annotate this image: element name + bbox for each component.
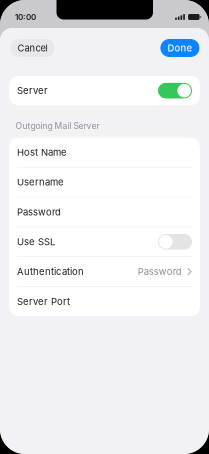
button[interactable]: Cancel <box>10 39 55 57</box>
staticText: Password <box>17 206 61 218</box>
staticText: Server <box>17 85 48 96</box>
button[interactable]: Authentication <box>9 257 200 286</box>
staticText: Host Name <box>17 146 67 158</box>
button[interactable]: Server Port <box>9 287 200 316</box>
staticText: Username <box>17 176 64 188</box>
staticText: Done <box>167 42 192 54</box>
staticText: 10:00 <box>15 12 36 22</box>
staticText: Cancel <box>17 42 47 54</box>
button[interactable]: Host Name <box>9 138 200 167</box>
staticText: Server Port <box>17 296 70 307</box>
staticText: Authentication <box>17 266 84 277</box>
button[interactable]: Server <box>9 76 200 105</box>
staticText: Outgoing Mail Server <box>15 121 99 131</box>
staticText: Password <box>138 266 182 277</box>
staticText: Use SSL <box>17 236 55 248</box>
button[interactable]: Password <box>9 197 200 227</box>
button[interactable]: Done <box>160 39 199 57</box>
button[interactable]: Username <box>9 167 200 197</box>
button[interactable]: Use SSL <box>9 227 200 256</box>
